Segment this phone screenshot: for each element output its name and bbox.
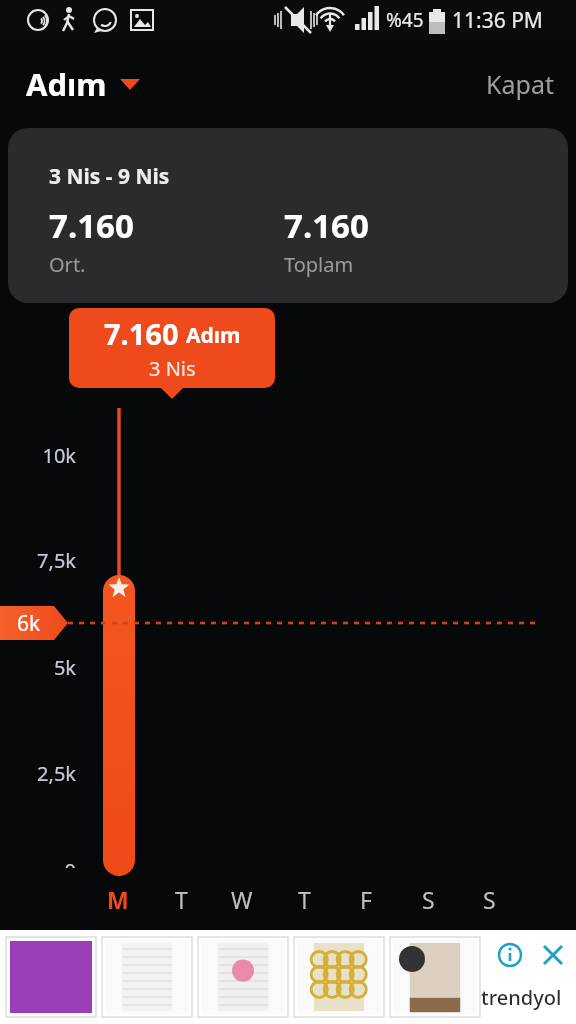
staticText: 3 Nis - 9 Nis (49, 162, 170, 191)
staticText: 3 Nis (149, 355, 196, 382)
button[interactable]: 3 Nis - 9 Nis (8, 128, 568, 303)
button[interactable]: W (226, 868, 258, 930)
staticText: S (483, 884, 496, 915)
button[interactable]: 7.160 (69, 308, 275, 388)
button[interactable]: T (165, 868, 197, 930)
staticText: 10k (0, 442, 76, 469)
staticText: 7,5k (0, 547, 76, 574)
staticText: W (231, 884, 253, 915)
button[interactable]: T (288, 868, 320, 930)
button[interactable]: 6k (0, 606, 68, 640)
staticText: T (175, 884, 188, 915)
staticText: F (360, 884, 372, 915)
button[interactable] (390, 937, 480, 1017)
other: Ad info and close (496, 942, 566, 968)
staticText: 6k (17, 609, 41, 638)
staticText: trendyol (481, 984, 562, 1011)
button[interactable]: Adım (26, 59, 148, 109)
button[interactable] (198, 937, 288, 1017)
staticText: 0 (0, 857, 76, 868)
staticText: 7.160 (49, 203, 134, 248)
staticText: Ort. (49, 251, 86, 278)
staticText: T (298, 884, 311, 915)
staticText: 11:36 PM (452, 6, 543, 35)
button[interactable] (102, 937, 192, 1017)
button[interactable] (294, 937, 384, 1017)
button[interactable]: Kapat (464, 55, 576, 113)
staticText: 5k (0, 654, 76, 681)
button[interactable]: F (350, 868, 382, 930)
button[interactable] (6, 937, 96, 1017)
staticText: Adım (26, 63, 107, 105)
staticText: 7.160 (104, 314, 179, 353)
staticText: S (422, 884, 435, 915)
staticText: Adım (186, 321, 241, 350)
staticText: 2,5k (0, 760, 76, 787)
button[interactable]: S (473, 868, 505, 930)
staticText: %45 (386, 7, 424, 33)
button[interactable]: M (102, 868, 134, 930)
staticText: Kapat (486, 67, 554, 101)
staticText: M (107, 884, 129, 915)
staticText: Toplam (284, 251, 354, 278)
staticText: 7.160 (284, 203, 369, 248)
button[interactable]: S (412, 868, 444, 930)
